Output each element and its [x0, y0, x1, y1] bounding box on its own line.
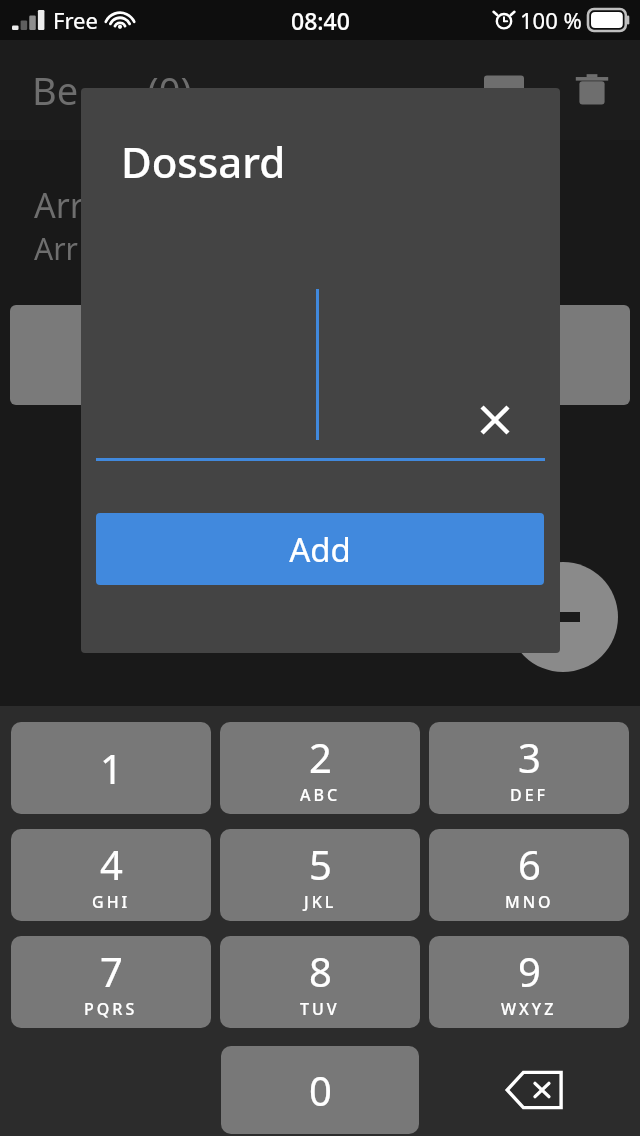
staticText: TUV: [300, 998, 340, 1020]
staticText: 8: [309, 944, 332, 998]
staticText: 0: [309, 1063, 332, 1117]
staticText: 7: [100, 944, 123, 998]
button[interactable]: [10, 305, 630, 405]
staticText: JKL: [304, 891, 337, 913]
staticText: 100 %: [520, 5, 582, 35]
staticText: Arr: [34, 228, 78, 269]
staticText: 1: [100, 741, 123, 795]
staticText: PQRS: [84, 998, 138, 1020]
staticText: 6: [518, 837, 541, 891]
button[interactable]: Clear: [467, 392, 523, 448]
button[interactable]: 7: [11, 936, 211, 1028]
staticText: 4: [100, 837, 123, 891]
staticText: 9: [518, 944, 541, 998]
staticText: 2: [309, 730, 332, 784]
button[interactable]: 8: [220, 936, 420, 1028]
staticText: Dossard: [121, 133, 286, 190]
button[interactable]: 6: [429, 829, 629, 921]
button[interactable]: 3: [429, 722, 629, 814]
button[interactable]: 9: [429, 936, 629, 1028]
staticText: 08:40: [291, 5, 350, 36]
button[interactable]: Add: [96, 513, 544, 585]
button[interactable]: Mail: [476, 62, 532, 118]
staticText: MNO: [505, 891, 554, 913]
staticText: Arr: [34, 182, 84, 228]
staticText: ABC: [300, 784, 341, 806]
button[interactable]: 0: [221, 1046, 419, 1134]
staticText: 3: [518, 730, 541, 784]
button[interactable]: Action: [508, 562, 618, 672]
button[interactable]: 4: [11, 829, 211, 921]
staticText: GHI: [92, 891, 131, 913]
staticText: Add: [289, 527, 351, 572]
button[interactable]: 5: [220, 829, 420, 921]
button[interactable]: Backspace: [460, 1046, 610, 1134]
button[interactable]: Delete: [564, 62, 620, 118]
staticText: 5: [309, 837, 332, 891]
staticText: WXYZ: [501, 998, 557, 1020]
staticText: Be (0): [32, 64, 192, 116]
staticText: DEF: [510, 784, 549, 806]
button[interactable]: 1: [11, 722, 211, 814]
button[interactable]: 2: [220, 722, 420, 814]
staticText: Free: [53, 5, 98, 35]
